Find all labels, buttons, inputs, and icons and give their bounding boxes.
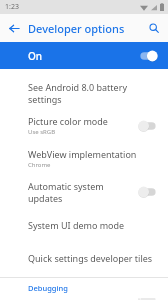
staticText: Chrome bbox=[28, 161, 51, 169]
staticText: Automatic system updates bbox=[28, 180, 138, 204]
button[interactable]: Picture color mode bbox=[0, 109, 168, 142]
button[interactable]: Toggle off bbox=[138, 186, 158, 198]
button[interactable]: System UI demo mode bbox=[0, 208, 168, 241]
staticText: Quick settings developer tiles bbox=[28, 252, 153, 264]
staticText: Debugging bbox=[28, 283, 68, 293]
staticText: See Android 8.0 battery settings bbox=[28, 81, 158, 105]
staticText: Use sRGB bbox=[28, 128, 56, 136]
staticText: Picture color mode bbox=[28, 115, 108, 127]
staticText: System UI demo mode bbox=[28, 219, 125, 231]
staticText: 1:23 bbox=[5, 2, 19, 12]
button[interactable]: See Android 8.0 battery settings bbox=[0, 76, 168, 109]
button[interactable]: Quick settings developer tiles bbox=[0, 241, 168, 274]
button[interactable]: WebView implementation bbox=[0, 142, 168, 175]
button[interactable]: Toggle off bbox=[138, 120, 158, 132]
staticText: On bbox=[28, 49, 138, 63]
button[interactable]: On bbox=[0, 42, 168, 69]
staticText: WebView implementation bbox=[28, 148, 137, 160]
button[interactable]: Toggle on bbox=[138, 50, 158, 62]
button[interactable]: USB debugging bbox=[0, 298, 168, 300]
button[interactable]: Toggle off bbox=[138, 298, 158, 300]
button[interactable]: Automatic system updates bbox=[0, 175, 168, 208]
button[interactable]: Back bbox=[5, 19, 23, 37]
staticText: Developer options bbox=[28, 21, 125, 36]
button[interactable]: Search bbox=[145, 19, 163, 37]
